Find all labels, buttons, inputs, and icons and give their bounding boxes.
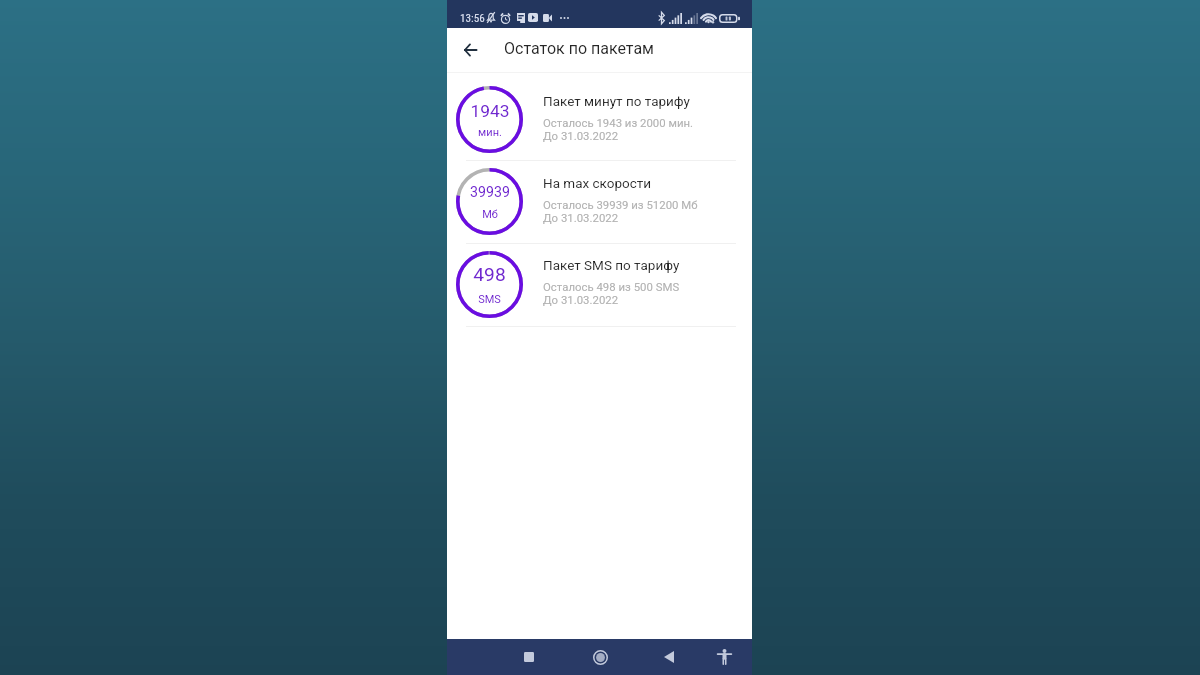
staticText: Остаток по пакетам <box>504 39 654 58</box>
staticText: 39939 <box>470 184 510 201</box>
staticText: 498 <box>473 263 506 286</box>
button[interactable]: Back <box>651 639 687 675</box>
staticText: До 31.03.2022 <box>543 211 619 224</box>
staticText: Осталось 498 из 500 SMS <box>543 280 680 293</box>
staticText: До 31.03.2022 <box>543 129 619 142</box>
staticText: SMS <box>478 293 501 306</box>
button[interactable]: Back <box>448 28 492 72</box>
button[interactable]: Accessibility <box>706 639 742 675</box>
staticText: 1943 <box>470 101 510 121</box>
button[interactable]: 1943 <box>447 73 752 160</box>
staticText: На max скорости <box>543 175 652 191</box>
button[interactable]: 39939 <box>447 161 752 243</box>
staticText: мин. <box>478 126 502 139</box>
staticText: Пакет SMS по тарифу <box>543 257 680 273</box>
button[interactable]: Home <box>582 639 618 675</box>
staticText: Осталось 1943 из 2000 мин. <box>543 116 694 129</box>
staticText: Пакет минут по тарифу <box>543 93 690 109</box>
button[interactable]: 498 <box>447 244 752 326</box>
button[interactable]: Recent apps <box>511 639 547 675</box>
staticText: Мб <box>482 208 498 221</box>
staticText: Осталось 39939 из 51200 Мб <box>543 198 698 211</box>
staticText: 13:56 <box>460 12 485 25</box>
staticText: До 31.03.2022 <box>543 293 619 306</box>
